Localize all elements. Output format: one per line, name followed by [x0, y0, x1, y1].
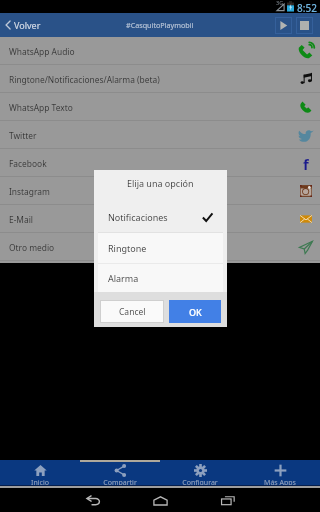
staticText: WhatsApp Texto: [9, 102, 297, 113]
staticText: Alarma: [108, 272, 213, 284]
button[interactable]: Más Apps: [240, 460, 320, 485]
staticText: E-Mail: [9, 214, 297, 225]
staticText: 8:52: [297, 1, 317, 14]
button[interactable]: Ringtone: [98, 233, 223, 263]
staticText: Configurar: [182, 478, 218, 485]
staticText: Ringtone/Notificaciones/Alarma (beta): [9, 74, 297, 85]
staticText: Instagram: [9, 186, 297, 197]
staticText: Twitter: [9, 130, 297, 141]
staticText: WhatsApp Audio: [9, 46, 297, 57]
staticText: Facebook: [9, 158, 297, 169]
staticText: Volver: [14, 19, 41, 31]
staticText: Notificaciones: [108, 211, 202, 223]
button[interactable]: Volver: [0, 13, 47, 37]
button[interactable]: Instagram: [0, 177, 320, 205]
staticText: Más Apps: [264, 478, 296, 485]
staticText: OK: [189, 306, 202, 318]
staticText: 3G: [276, 0, 284, 6]
button[interactable]: E-Mail: [0, 205, 320, 233]
staticText: Elija una opción: [127, 177, 194, 189]
button[interactable]: Stop: [296, 17, 313, 34]
staticText: #CasquitoPlaymobil: [126, 20, 194, 30]
button[interactable]: Notificaciones: [98, 202, 223, 232]
staticText: Otro medio: [9, 242, 297, 253]
button[interactable]: Cancel: [100, 300, 164, 323]
button[interactable]: OK: [169, 300, 221, 323]
button[interactable]: Recents: [210, 490, 245, 511]
button[interactable]: Ringtone/Notificaciones/Alarma (beta): [0, 65, 320, 93]
button[interactable]: Home: [143, 490, 178, 511]
staticText: Ringtone: [108, 242, 213, 254]
button[interactable]: Compartir: [80, 460, 160, 485]
staticText: f: [303, 154, 309, 172]
staticText: Cancel: [119, 306, 146, 318]
button[interactable]: WhatsApp Audio: [0, 37, 320, 65]
button[interactable]: Facebook: [0, 149, 320, 177]
staticText: Inicio: [31, 478, 49, 485]
button[interactable]: WhatsApp Texto: [0, 93, 320, 121]
button[interactable]: Inicio: [0, 460, 80, 485]
button[interactable]: Play: [275, 17, 292, 34]
button[interactable]: Back: [75, 490, 110, 511]
button[interactable]: Twitter: [0, 121, 320, 149]
button[interactable]: Configurar: [160, 460, 240, 485]
button[interactable]: Alarma: [98, 264, 223, 292]
button[interactable]: Otro medio: [0, 233, 320, 261]
staticText: Compartir: [103, 478, 137, 485]
